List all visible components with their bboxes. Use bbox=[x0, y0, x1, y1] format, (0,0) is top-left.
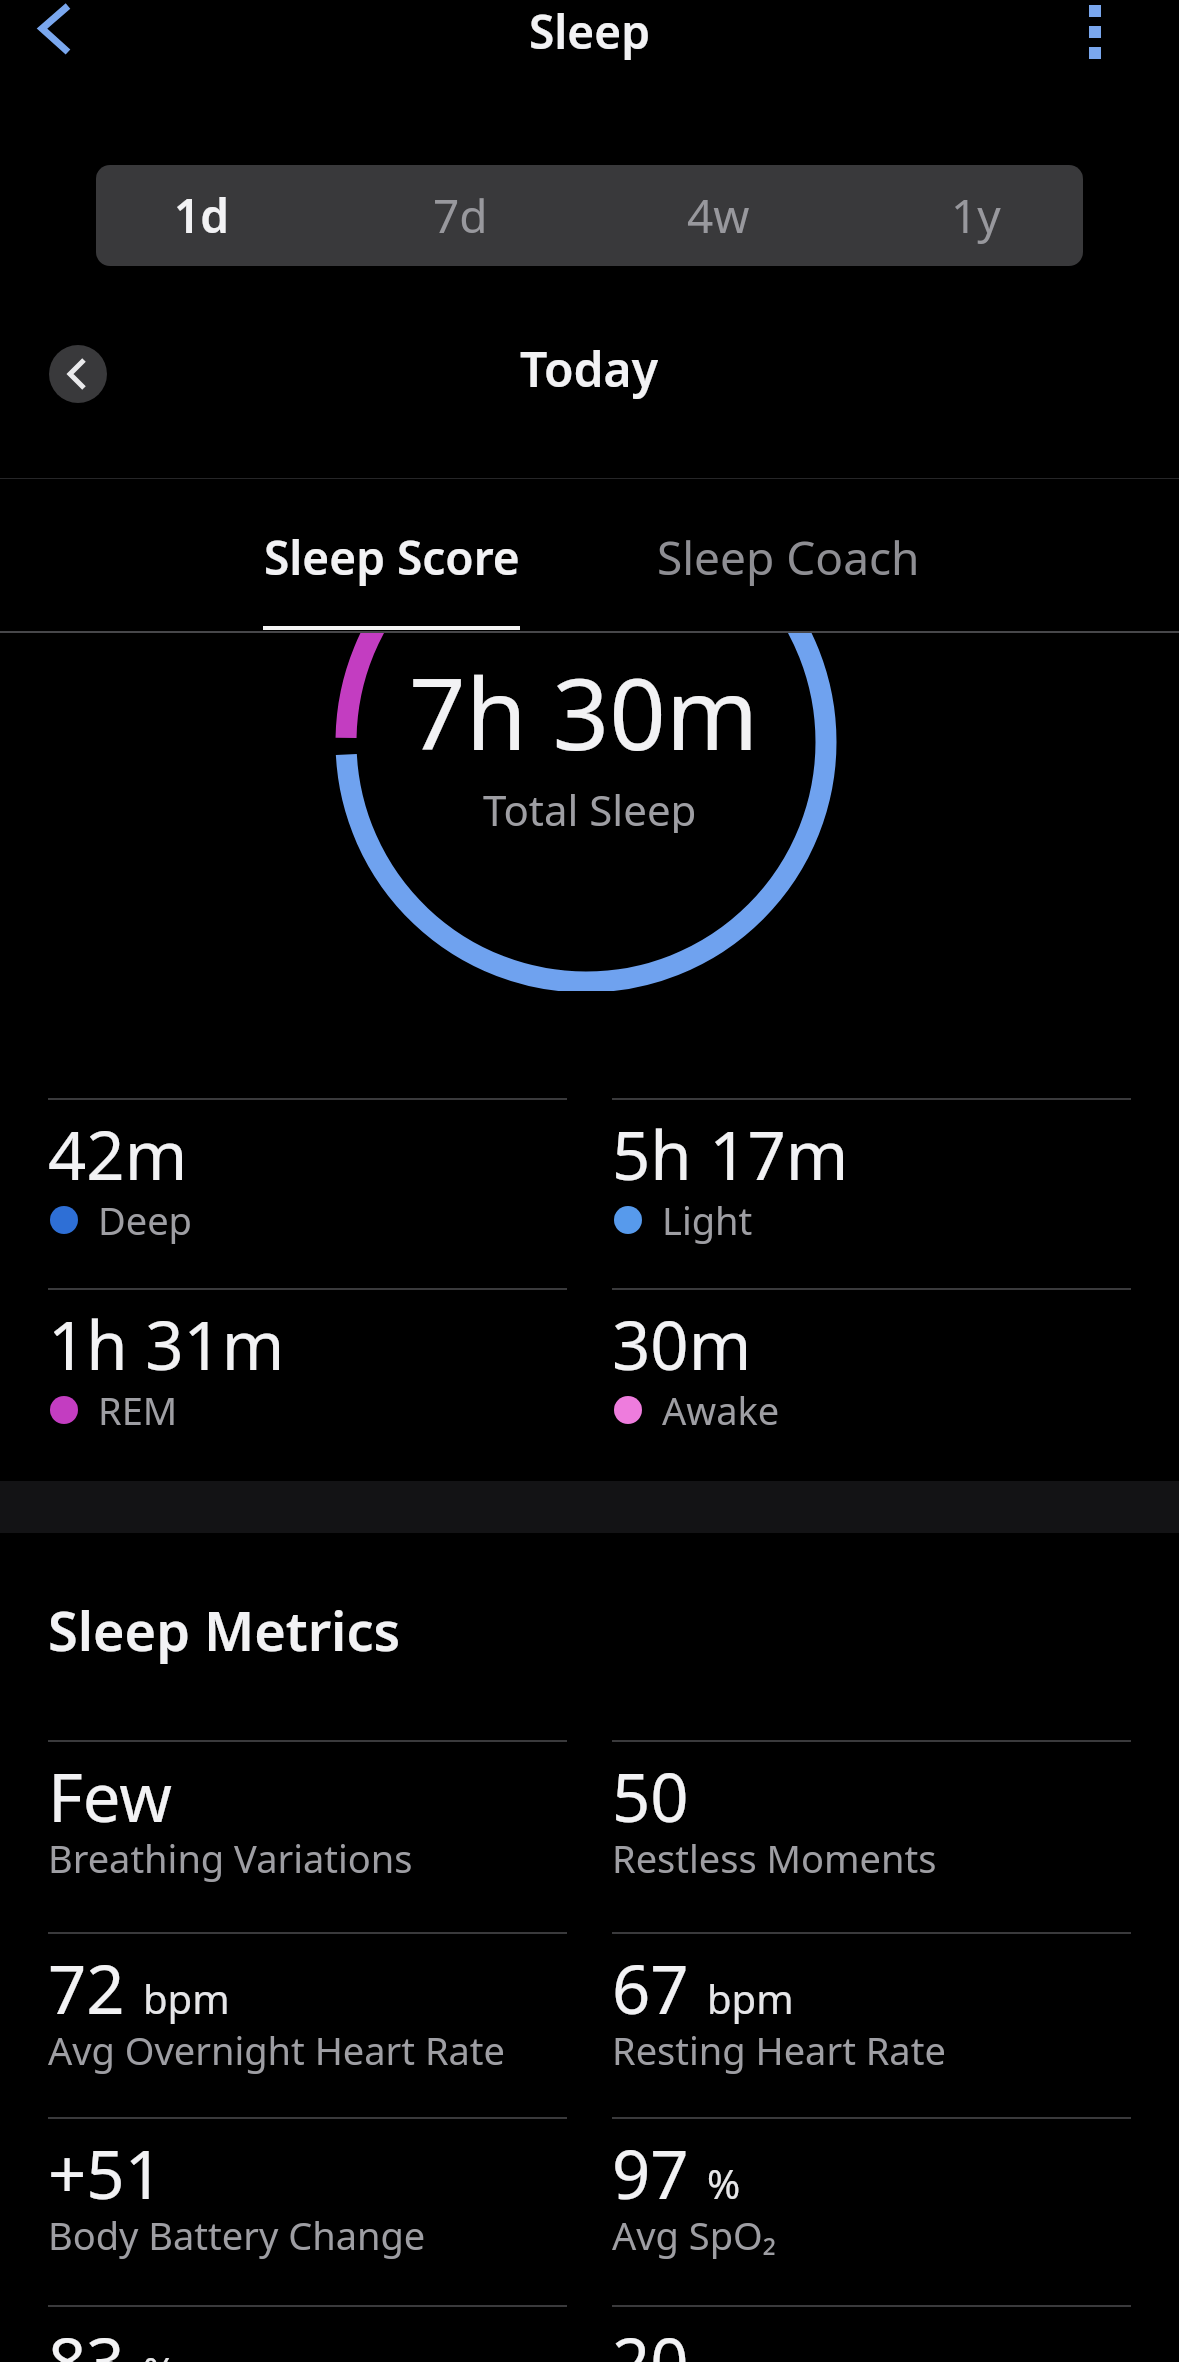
staticText: Awake bbox=[662, 1384, 780, 1436]
staticText: 5h 17m bbox=[612, 1108, 849, 1199]
staticText: bpm bbox=[143, 1971, 230, 2025]
staticText: Deep bbox=[98, 1194, 192, 1246]
staticText: Sleep Coach bbox=[657, 526, 920, 589]
staticText: Avg SpO₂ bbox=[612, 2209, 777, 2261]
staticText: 7d bbox=[433, 184, 488, 247]
staticText: 72 bbox=[48, 1942, 125, 2033]
staticText: Avg Overnight Heart Rate bbox=[48, 2024, 505, 2076]
staticText: 7h 30m bbox=[409, 644, 759, 768]
staticText: Resting Heart Rate bbox=[612, 2024, 946, 2076]
staticText: 97 bbox=[612, 2127, 689, 2218]
button[interactable] bbox=[22, 0, 82, 62]
staticText: Body Battery Change bbox=[48, 2209, 426, 2261]
button[interactable] bbox=[1080, 0, 1110, 64]
button[interactable]: Sleep Score bbox=[233, 502, 551, 612]
staticText: 1d bbox=[174, 184, 230, 247]
staticText: 42m bbox=[48, 1108, 188, 1199]
button[interactable]: 4w bbox=[654, 165, 782, 266]
staticText: 4w bbox=[687, 184, 750, 247]
staticText: % bbox=[143, 2344, 177, 2362]
staticText: % bbox=[707, 2156, 741, 2210]
button[interactable] bbox=[49, 345, 107, 403]
staticText: Total Sleep bbox=[483, 781, 697, 833]
staticText: Sleep bbox=[529, 0, 650, 62]
staticText: REM bbox=[98, 1384, 178, 1436]
button[interactable]: 1d bbox=[138, 165, 266, 266]
staticText: 1h 31m bbox=[48, 1298, 285, 1389]
staticText: Few bbox=[48, 1750, 172, 1841]
staticText: 67 bbox=[612, 1942, 689, 2033]
staticText: 20 bbox=[612, 2315, 689, 2362]
staticText: Sleep Metrics bbox=[48, 1593, 401, 1667]
staticText: Sleep Score bbox=[264, 526, 520, 589]
staticText: 1y bbox=[951, 184, 1001, 247]
button[interactable]: Sleep Coach bbox=[628, 502, 948, 612]
staticText: bpm bbox=[707, 1971, 794, 2025]
staticText: Restless Moments bbox=[612, 1832, 937, 1884]
button[interactable]: 7d bbox=[396, 165, 524, 266]
staticText: Breathing Variations bbox=[48, 1832, 413, 1884]
staticText: 30m bbox=[612, 1298, 752, 1389]
button[interactable]: 1y bbox=[912, 165, 1040, 266]
staticText: +51 bbox=[48, 2127, 163, 2218]
staticText: Today bbox=[520, 336, 659, 400]
staticText: Light bbox=[662, 1194, 753, 1246]
staticText: 50 bbox=[612, 1750, 689, 1841]
staticText: 83 bbox=[48, 2315, 125, 2362]
